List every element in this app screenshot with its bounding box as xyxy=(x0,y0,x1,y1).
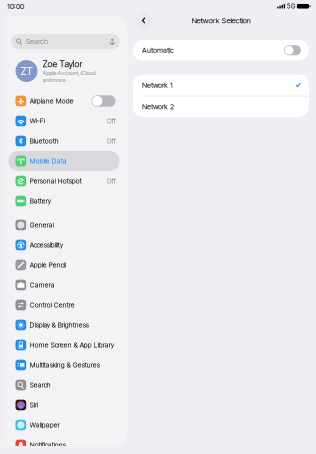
button[interactable]: Siri xyxy=(8,395,119,415)
staticText: Off xyxy=(106,177,115,185)
button[interactable]: Wallpaper xyxy=(8,415,119,435)
staticText: 5G xyxy=(287,2,295,10)
staticText: Search xyxy=(26,37,48,46)
staticText: Network Selection xyxy=(191,16,250,25)
button[interactable]: Apple Pencil xyxy=(8,255,119,275)
staticText: Notifications xyxy=(30,441,66,449)
button[interactable]: Battery xyxy=(8,191,119,211)
staticText: Control Centre xyxy=(30,301,75,309)
staticText: Apple Account, iCloud xyxy=(42,69,95,76)
staticText: ZT xyxy=(20,64,32,77)
button[interactable]: Network 1 xyxy=(133,75,309,96)
button[interactable]: Network 2 xyxy=(133,96,309,117)
button[interactable]: Automatic xyxy=(284,45,301,55)
button[interactable]: Home Screen & App Library xyxy=(8,335,119,355)
button[interactable]: ZT xyxy=(8,60,119,82)
staticText: Mobile Data xyxy=(30,157,67,165)
staticText: Zoe Taylor xyxy=(42,59,82,69)
staticText: Accessibility xyxy=(30,241,63,249)
button[interactable]: Wi-Fi xyxy=(8,111,119,131)
button[interactable]: Notifications xyxy=(8,435,119,454)
staticText: Airplane Mode xyxy=(30,97,74,105)
button[interactable]: Mobile Data xyxy=(8,151,119,171)
staticText: Siri xyxy=(30,401,38,409)
staticText: Home Screen & App Library xyxy=(30,341,114,349)
staticText: Battery xyxy=(30,197,51,205)
staticText: Search xyxy=(30,381,51,389)
staticText: Personal Hotspot xyxy=(30,177,82,185)
button[interactable]: Control Centre xyxy=(8,295,119,315)
button[interactable]: Back xyxy=(135,12,152,29)
staticText: 10:00 xyxy=(7,2,24,11)
button[interactable]: Display & Brightness xyxy=(8,315,119,335)
button[interactable]: Airplane Mode xyxy=(8,91,119,111)
staticText: Automatic xyxy=(142,46,174,55)
button[interactable]: Search xyxy=(8,375,119,395)
staticText: Off xyxy=(106,117,115,125)
staticText: Wi-Fi xyxy=(30,117,45,125)
button[interactable]: Camera xyxy=(8,275,119,295)
staticText: Display & Brightness xyxy=(30,321,89,329)
button[interactable]: Bluetooth xyxy=(8,131,119,151)
staticText: Multitasking & Gestures xyxy=(30,361,100,369)
staticText: Bluetooth xyxy=(30,137,59,145)
staticText: and more xyxy=(42,76,65,83)
button[interactable]: Multitasking & Gestures xyxy=(8,355,119,375)
button[interactable]: Accessibility xyxy=(8,235,119,255)
staticText: Network 1 xyxy=(142,81,173,90)
staticText: General xyxy=(30,221,54,229)
staticText: Apple Pencil xyxy=(30,261,66,269)
button[interactable]: Personal Hotspot xyxy=(8,171,119,191)
button[interactable]: General xyxy=(8,215,119,235)
staticText: Camera xyxy=(30,281,55,289)
staticText: Off xyxy=(106,137,115,145)
staticText: Wallpaper xyxy=(30,421,60,429)
staticText: Network 2 xyxy=(142,102,174,111)
